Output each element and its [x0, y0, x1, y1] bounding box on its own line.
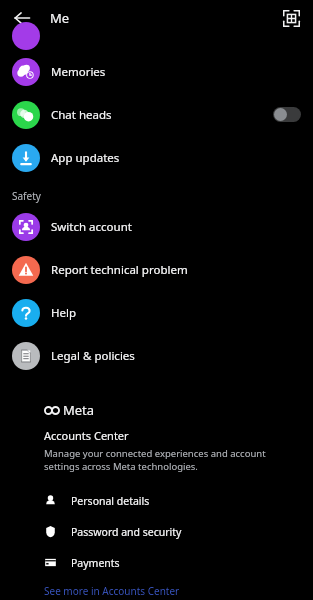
staticText: Switch account: [51, 219, 132, 235]
button[interactable]: App updates: [0, 136, 313, 179]
button[interactable]: Password and security: [44, 516, 301, 547]
staticText: Chat heads: [51, 107, 112, 123]
button[interactable]: Chat heads: [0, 93, 313, 136]
staticText: Password and security: [71, 525, 182, 539]
button[interactable]: Scan QR code: [277, 4, 305, 32]
staticText: Safety: [12, 189, 41, 203]
button[interactable]: Back: [6, 2, 38, 34]
staticText: Legal & policies: [51, 348, 135, 364]
staticText: Report technical problem: [51, 262, 188, 278]
staticText: Accounts Center: [44, 428, 129, 443]
staticText: Meta: [63, 401, 95, 419]
staticText: Manage your connected experiences and ac…: [44, 447, 301, 473]
button[interactable]: Legal & policies: [0, 334, 313, 377]
staticText: Personal details: [71, 494, 150, 508]
button[interactable]: Help: [0, 291, 313, 334]
staticText: Payments: [71, 556, 120, 570]
button[interactable]: Report technical problem: [0, 248, 313, 291]
staticText: Help: [51, 305, 77, 321]
button[interactable]: Chat heads toggle: [273, 107, 301, 122]
staticText: Me: [50, 9, 70, 27]
staticText: See more in Accounts Center: [44, 584, 180, 598]
staticText: App updates: [51, 150, 120, 166]
button[interactable]: See more in Accounts Center: [44, 584, 180, 598]
button[interactable]: Switch account: [0, 205, 313, 248]
button[interactable]: Memories: [0, 50, 313, 93]
button[interactable]: Personal details: [44, 485, 301, 516]
staticText: Memories: [51, 64, 106, 80]
button[interactable]: Payments: [44, 547, 301, 578]
